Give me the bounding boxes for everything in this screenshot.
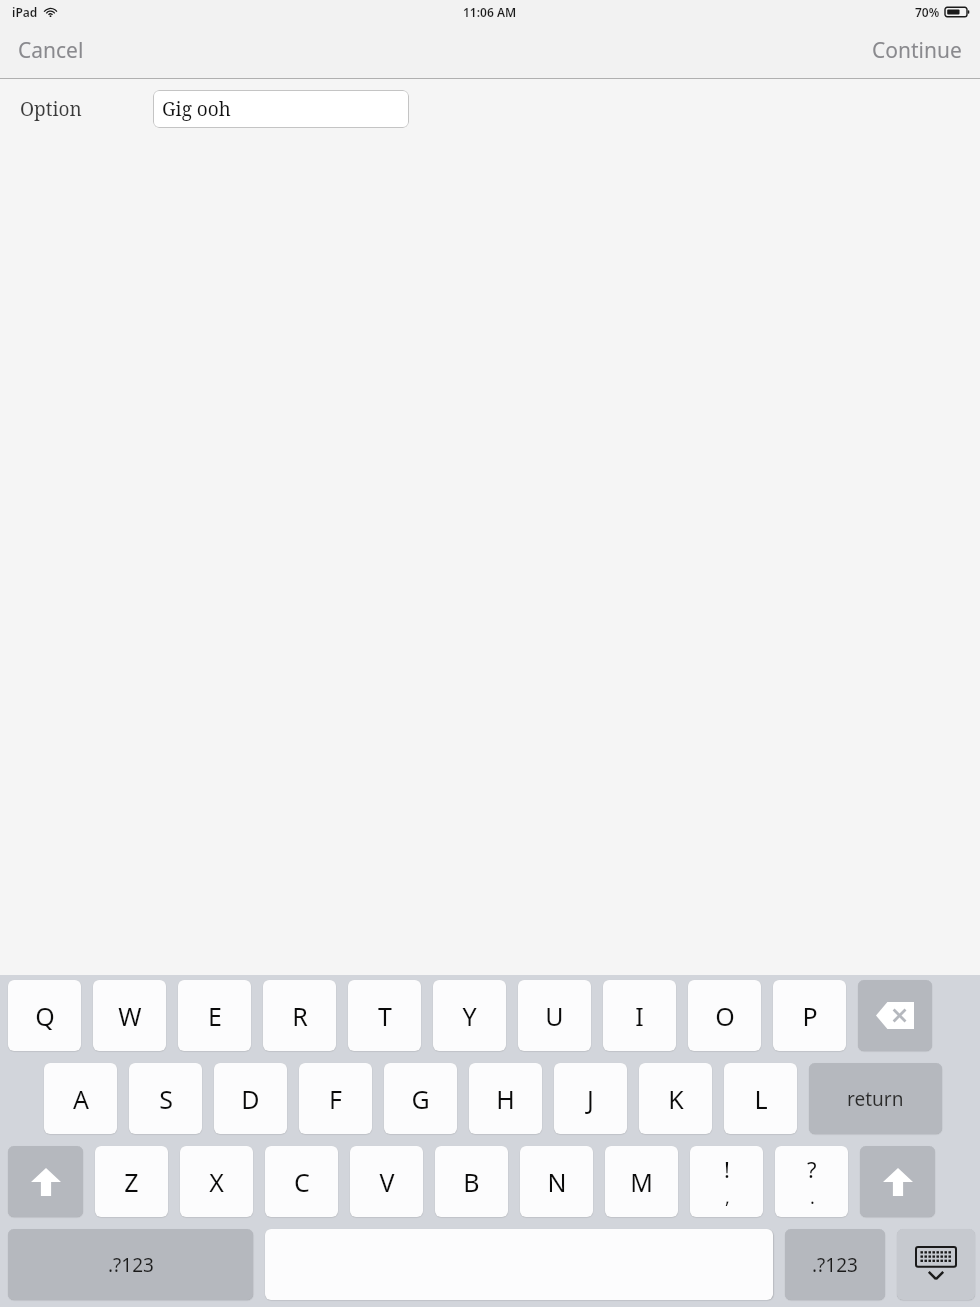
staticText: Z — [124, 1165, 139, 1199]
staticText: Gig ooh — [162, 96, 231, 122]
staticText: T — [378, 999, 392, 1033]
button[interactable]: G — [384, 1063, 457, 1134]
button[interactable]: N — [520, 1146, 593, 1217]
staticText: G — [411, 1082, 430, 1116]
staticText: M — [630, 1165, 653, 1199]
button[interactable]: K — [639, 1063, 712, 1134]
staticText: W — [118, 999, 142, 1033]
button[interactable]: T — [348, 980, 421, 1051]
staticText: B — [463, 1165, 480, 1199]
button[interactable]: Shift — [8, 1146, 83, 1217]
button[interactable]: W — [93, 980, 166, 1051]
staticText: Cancel — [18, 36, 84, 65]
staticText: 11:06 AM — [463, 4, 517, 20]
button[interactable]: X — [180, 1146, 253, 1217]
staticText: N — [547, 1165, 567, 1199]
staticText: U — [545, 999, 564, 1033]
staticText: J — [587, 1082, 594, 1116]
button[interactable]: U — [518, 980, 591, 1051]
button[interactable]: Cancel — [0, 26, 102, 75]
button[interactable]: ? — [775, 1146, 848, 1217]
staticText: C — [294, 1165, 310, 1199]
staticText: K — [668, 1082, 684, 1116]
staticText: E — [208, 999, 222, 1033]
staticText: O — [715, 999, 735, 1033]
staticText: .?123 — [108, 1252, 154, 1278]
staticText: Continue — [872, 36, 962, 65]
button[interactable]: Gig ooh — [153, 90, 409, 128]
staticText: X — [209, 1165, 224, 1199]
staticText: P — [802, 999, 818, 1033]
staticText: L — [754, 1082, 768, 1116]
staticText: Option — [20, 96, 82, 122]
button[interactable]: .?123 — [8, 1229, 253, 1300]
button[interactable]: I — [603, 980, 676, 1051]
staticText: ! — [724, 1154, 730, 1184]
button[interactable]: Y — [433, 980, 506, 1051]
button[interactable]: F — [299, 1063, 372, 1134]
button[interactable]: A — [44, 1063, 117, 1134]
staticText: S — [159, 1082, 173, 1116]
staticText: Q — [35, 999, 55, 1033]
staticText: . — [810, 1185, 815, 1210]
staticText: V — [379, 1165, 395, 1199]
staticText: H — [496, 1082, 515, 1116]
button[interactable]: H — [469, 1063, 542, 1134]
button[interactable]: C — [265, 1146, 338, 1217]
button[interactable]: .?123 — [785, 1229, 885, 1300]
staticText: R — [292, 999, 308, 1033]
staticText: return — [847, 1086, 904, 1112]
button[interactable]: J — [554, 1063, 627, 1134]
button[interactable]: M — [605, 1146, 678, 1217]
button[interactable]: L — [724, 1063, 797, 1134]
staticText: , — [725, 1185, 730, 1210]
button[interactable]: return — [809, 1063, 942, 1134]
button[interactable]: Backspace — [858, 980, 932, 1051]
button[interactable]: V — [350, 1146, 423, 1217]
staticText: A — [73, 1082, 89, 1116]
button[interactable]: D — [214, 1063, 287, 1134]
staticText: D — [241, 1082, 260, 1116]
staticText: F — [329, 1082, 342, 1116]
button[interactable]: E — [178, 980, 251, 1051]
button[interactable]: B — [435, 1146, 508, 1217]
staticText: iPad — [12, 4, 38, 20]
button[interactable]: Shift — [860, 1146, 935, 1217]
button[interactable]: Z — [95, 1146, 168, 1217]
button[interactable]: S — [129, 1063, 202, 1134]
staticText: ? — [807, 1154, 817, 1184]
button[interactable]: P — [773, 980, 846, 1051]
button[interactable]: Q — [8, 980, 81, 1051]
button[interactable]: R — [263, 980, 336, 1051]
staticText: Y — [462, 999, 477, 1033]
button[interactable]: ! — [690, 1146, 763, 1217]
staticText: .?123 — [812, 1252, 858, 1278]
button[interactable]: Hide keyboard — [897, 1229, 975, 1300]
button[interactable]: O — [688, 980, 761, 1051]
button[interactable]: Continue — [854, 26, 980, 75]
staticText: 70% — [915, 4, 940, 20]
staticText: I — [635, 999, 644, 1033]
